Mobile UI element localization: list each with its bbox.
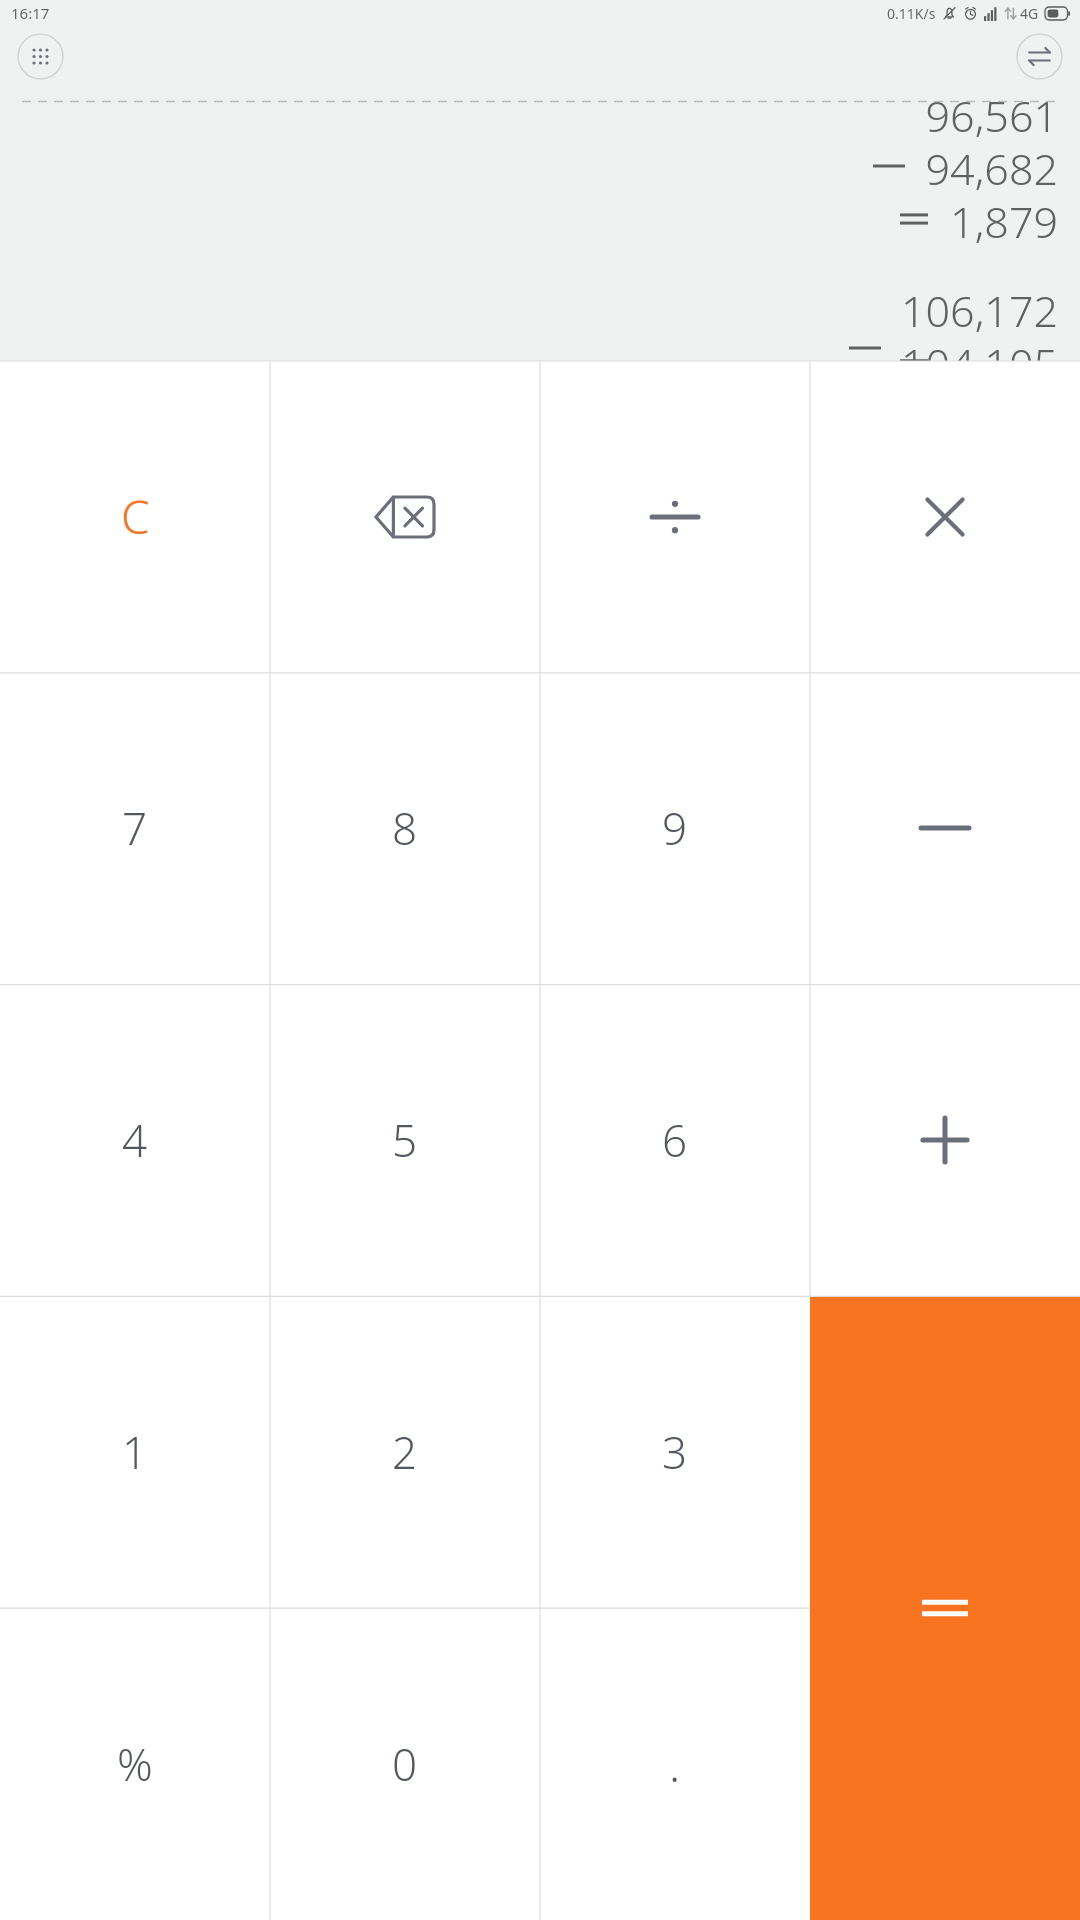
staticText: 8 bbox=[392, 798, 418, 858]
staticText: 5 bbox=[392, 1110, 418, 1170]
button[interactable]: Clear bbox=[0, 361, 270, 672]
staticText: 1,879 bbox=[950, 192, 1058, 245]
button[interactable]: Equals bbox=[810, 1296, 1080, 1920]
staticText: 6 bbox=[662, 1110, 688, 1170]
button[interactable]: % bbox=[0, 1608, 270, 1920]
other: Backspace bbox=[376, 497, 434, 537]
button[interactable]: Multiply bbox=[810, 361, 1080, 672]
staticText: 106,172 bbox=[901, 281, 1058, 334]
button[interactable]: 4 bbox=[0, 984, 270, 1296]
staticText: . bbox=[669, 1733, 681, 1796]
staticText: 4 bbox=[122, 1110, 148, 1170]
button[interactable]: 0 bbox=[270, 1608, 540, 1920]
button[interactable]: 3 bbox=[540, 1296, 810, 1608]
button[interactable]: 5 bbox=[270, 984, 540, 1296]
staticText: 2 bbox=[392, 1422, 418, 1482]
staticText: 9 bbox=[662, 798, 688, 858]
staticText: 0 bbox=[392, 1734, 418, 1794]
other: Clear bbox=[121, 485, 150, 548]
staticText: 16:17 bbox=[11, 3, 50, 23]
button[interactable]: 6 bbox=[540, 984, 810, 1296]
staticText: 4G bbox=[1020, 4, 1039, 23]
button[interactable]: 1 bbox=[0, 1296, 270, 1608]
button[interactable]: 2 bbox=[270, 1296, 540, 1608]
staticText: 7 bbox=[122, 798, 148, 858]
button[interactable]: Divide bbox=[540, 361, 810, 672]
button[interactable]: Backspace bbox=[270, 361, 540, 672]
button[interactable]: 7 bbox=[0, 672, 270, 984]
button[interactable]: 8 bbox=[270, 672, 540, 984]
staticText: % bbox=[117, 1734, 153, 1794]
button[interactable]: 9 bbox=[540, 672, 810, 984]
staticText: 96,561 bbox=[925, 86, 1058, 139]
button[interactable]: Plus bbox=[810, 984, 1080, 1296]
button[interactable]: Convert bbox=[1016, 33, 1063, 80]
other: Divide bbox=[650, 495, 700, 539]
staticText: 0.11K/s bbox=[887, 4, 936, 23]
button[interactable]: Minus bbox=[810, 672, 1080, 984]
staticText: C bbox=[121, 485, 150, 548]
staticText: 94,682 bbox=[925, 139, 1058, 192]
staticText: 104,105 bbox=[901, 334, 1058, 361]
button[interactable]: Apps bbox=[17, 33, 64, 80]
staticText: 1 bbox=[122, 1422, 148, 1482]
staticText: 3 bbox=[662, 1422, 688, 1482]
other: Multiply bbox=[923, 495, 967, 539]
